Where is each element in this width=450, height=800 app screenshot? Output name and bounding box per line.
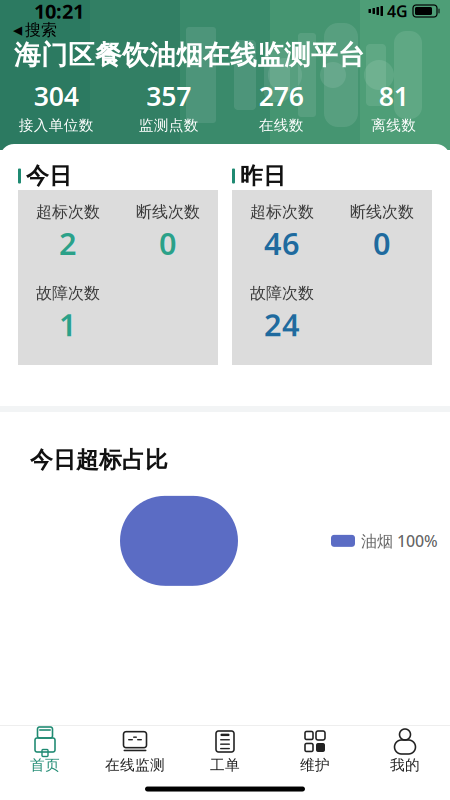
staticText: 4G: [387, 0, 408, 22]
button[interactable]: 维护: [270, 728, 360, 776]
staticText: 监测点数: [139, 116, 199, 134]
staticText: 首页: [30, 756, 60, 774]
staticText: ◀: [13, 23, 22, 37]
staticText: 46: [264, 223, 300, 263]
staticText: 0: [373, 223, 391, 263]
staticText: 304: [34, 78, 79, 113]
staticText: 超标次数: [36, 202, 100, 222]
staticText: 超标次数: [250, 202, 314, 222]
staticText: 81: [379, 78, 409, 113]
staticText: 搜索: [25, 20, 57, 40]
staticText: 1: [59, 304, 77, 345]
staticText: 10:21: [34, 0, 84, 24]
staticText: 今日超标占比: [30, 446, 168, 474]
staticText: 0: [159, 223, 177, 263]
staticText: 我的: [390, 756, 420, 774]
staticText: 在线监测: [105, 756, 165, 774]
button[interactable]: 我的: [360, 728, 450, 776]
staticText: 断线次数: [350, 202, 414, 222]
staticText: 海门区餐饮油烟在线监测平台: [14, 39, 365, 71]
staticText: 357: [146, 78, 191, 113]
button[interactable]: ⌂: [0, 728, 90, 776]
staticText: 昨日: [240, 162, 286, 190]
staticText: 在线数: [259, 116, 304, 134]
staticText: 接入单位数: [19, 116, 94, 134]
staticText: 24: [264, 304, 300, 345]
staticText: 今日: [26, 162, 72, 190]
staticText: 工单: [210, 756, 240, 774]
staticText: 断线次数: [136, 202, 200, 222]
staticText: 276: [259, 78, 304, 113]
staticText: 故障次数: [250, 283, 314, 303]
staticText: 故障次数: [36, 283, 100, 303]
staticText: 2: [59, 223, 77, 263]
staticText: 离线数: [371, 116, 416, 134]
button[interactable]: 工单: [180, 728, 270, 776]
button[interactable]: 在线监测: [90, 728, 180, 776]
staticText: 维护: [300, 756, 330, 774]
staticText: 油烟 100%: [361, 530, 438, 551]
